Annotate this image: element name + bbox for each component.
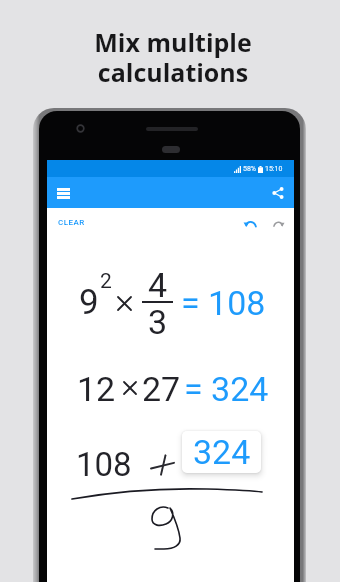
button[interactable]: Undo [242, 216, 258, 232]
button[interactable]: Redo [271, 216, 287, 232]
staticText: 2 [100, 269, 112, 294]
button[interactable]: Share [267, 182, 289, 204]
staticText: 4 [148, 265, 168, 305]
staticText: 15:10 [265, 165, 283, 173]
staticText: 27 [142, 369, 181, 409]
staticText: 12 [77, 369, 116, 409]
button[interactable]: CLEAR [58, 218, 85, 227]
staticText: = 324 [184, 369, 269, 409]
button[interactable]: 324 [182, 431, 261, 473]
staticText: 58% [243, 165, 256, 173]
staticText: 3 [148, 302, 168, 342]
staticText: 108 [76, 445, 132, 484]
button[interactable]: Open navigation menu [52, 182, 74, 204]
staticText: = 108 [181, 283, 266, 323]
staticText: Mix multiple calculations [3, 25, 340, 90]
staticText: 324 [193, 432, 251, 472]
staticText: 9 [79, 282, 99, 323]
